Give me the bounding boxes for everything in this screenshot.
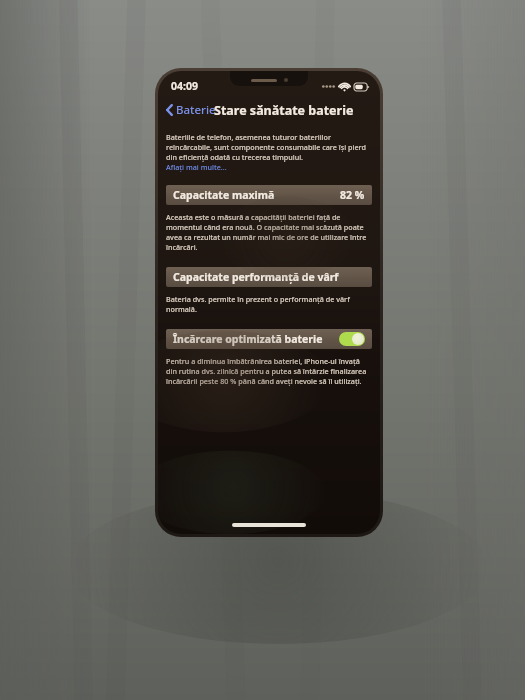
button[interactable]: Capacitate performanță de vârf <box>166 267 372 287</box>
button[interactable]: Capacitate maximă <box>166 185 372 205</box>
staticText: Capacitate maximă <box>173 188 340 202</box>
staticText: Încărcare optimizată baterie <box>173 332 339 346</box>
staticText: Bateria dvs. permite în prezent o perfor… <box>166 294 372 314</box>
button[interactable]: Încărcare optimizată baterie <box>166 329 372 349</box>
staticText: Baterie <box>176 102 216 118</box>
staticText: 04:09 <box>171 79 198 93</box>
staticText: Stare sănătate baterie <box>214 102 354 119</box>
button[interactable]: Baterie <box>158 99 222 121</box>
button[interactable]: Încărcare optimizată baterie activată <box>339 332 365 346</box>
staticText: Aceasta este o măsură a capacității bate… <box>166 212 372 252</box>
button[interactable]: Aflați mai multe... <box>166 162 227 172</box>
staticText: Bateriile de telefon, asemenea tuturor b… <box>166 132 372 162</box>
staticText: Capacitate performanță de vârf <box>173 270 365 284</box>
staticText: 82 % <box>340 188 365 202</box>
staticText: Pentru a diminua îmbătrânirea bateriei, … <box>166 356 372 386</box>
